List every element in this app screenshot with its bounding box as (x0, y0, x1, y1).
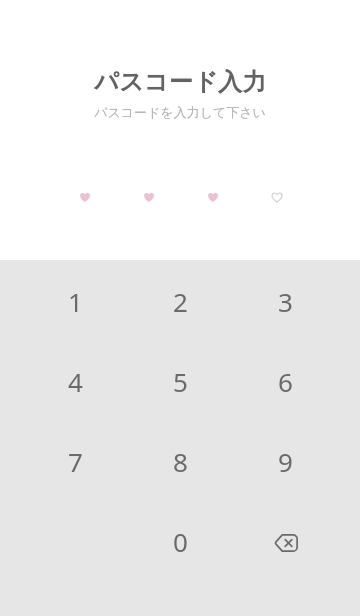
staticText: 5 (173, 364, 188, 399)
staticText: 8 (173, 444, 188, 479)
staticText: 3 (278, 284, 293, 319)
button[interactable]: 5 (128, 340, 233, 420)
staticText: 2 (173, 284, 188, 319)
button[interactable]: 4 (23, 340, 128, 420)
button[interactable]: 0 (128, 500, 233, 580)
staticText: 0 (173, 524, 188, 559)
staticText: 1 (68, 284, 83, 319)
button[interactable]: 1 (23, 260, 128, 340)
staticText: パスコード入力 (94, 67, 267, 97)
staticText: 9 (278, 444, 293, 479)
button[interactable]: 6 (233, 340, 338, 420)
button[interactable]: 2 (128, 260, 233, 340)
staticText: パスコードを入力して下さい (94, 104, 266, 120)
staticText: 4 (68, 364, 83, 399)
staticText: 6 (278, 364, 293, 399)
button[interactable]: 7 (23, 420, 128, 500)
button[interactable]: 3 (233, 260, 338, 340)
staticText: 7 (68, 444, 83, 479)
button[interactable]: 9 (233, 420, 338, 500)
button[interactable]: Delete (233, 500, 338, 580)
button[interactable]: 8 (128, 420, 233, 500)
